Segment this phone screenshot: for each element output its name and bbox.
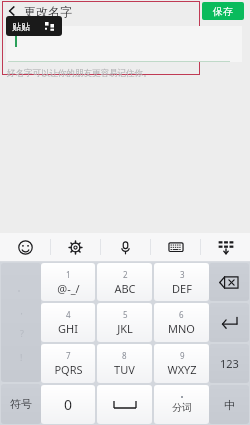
button[interactable]: 保存 bbox=[202, 2, 244, 20]
button[interactable]: 符号 bbox=[1, 384, 41, 424]
button[interactable]: 6 bbox=[154, 303, 209, 342]
button[interactable]: 7 bbox=[41, 344, 95, 383]
button[interactable]: 分词 bbox=[154, 385, 209, 424]
button[interactable]: 9 bbox=[154, 344, 209, 383]
staticText: JKL bbox=[117, 321, 133, 336]
button[interactable]: 2 bbox=[97, 263, 152, 301]
staticText: 贴贴 bbox=[12, 21, 30, 32]
staticText: 7 bbox=[66, 350, 71, 361]
staticText: PQRS bbox=[54, 362, 83, 377]
staticText: DEF bbox=[172, 281, 192, 296]
button[interactable]: Hide keyboard bbox=[201, 233, 250, 261]
staticText: MNO bbox=[168, 321, 195, 336]
button[interactable]: 中 bbox=[209, 385, 249, 424]
button[interactable] bbox=[6, 26, 242, 62]
staticText: WXYZ bbox=[167, 362, 197, 377]
button[interactable]: 0 bbox=[41, 385, 95, 424]
staticText: 1 bbox=[66, 269, 71, 280]
button[interactable]: Backspace bbox=[209, 263, 249, 301]
button[interactable]: 贴贴 bbox=[6, 16, 62, 36]
staticText: 9 bbox=[180, 350, 185, 361]
staticText: 2 bbox=[123, 269, 128, 280]
staticText: 6 bbox=[179, 309, 184, 320]
staticText: ! bbox=[20, 351, 23, 363]
staticText: 分词 bbox=[172, 401, 192, 414]
staticText: 好名字可以让你的朋友更容易记住你。 bbox=[7, 68, 152, 79]
staticText: 3 bbox=[180, 269, 185, 280]
staticText: @-_/ bbox=[57, 281, 80, 296]
staticText: 8 bbox=[122, 350, 127, 361]
button[interactable]: Keyboard layout bbox=[151, 233, 200, 261]
button[interactable]: Back bbox=[0, 0, 24, 22]
staticText: 保存 bbox=[213, 5, 233, 18]
button[interactable]: 8 bbox=[97, 344, 152, 383]
staticText: GHI bbox=[58, 321, 78, 336]
button[interactable]: Enter bbox=[209, 303, 249, 342]
staticText: 5 bbox=[123, 309, 128, 320]
button[interactable]: 5 bbox=[97, 303, 152, 342]
staticText: ? bbox=[20, 327, 24, 339]
button[interactable]: 4 bbox=[41, 303, 95, 342]
button[interactable]: 3 bbox=[154, 263, 209, 301]
button[interactable]: Voice input bbox=[101, 233, 150, 261]
button[interactable]: Emoji bbox=[0, 233, 50, 261]
staticText: 0 bbox=[64, 395, 73, 414]
button[interactable]: Settings bbox=[51, 233, 100, 261]
button[interactable]: Space bbox=[97, 385, 152, 424]
staticText: ABC bbox=[114, 281, 136, 296]
staticText: 中 bbox=[224, 398, 235, 412]
button[interactable]: 123 bbox=[209, 344, 249, 383]
staticText: TUV bbox=[114, 362, 135, 377]
staticText: 4 bbox=[66, 309, 71, 320]
staticText: 123 bbox=[220, 356, 239, 371]
button[interactable]: 1 bbox=[41, 263, 95, 301]
staticText: 更改名字 bbox=[24, 4, 72, 19]
staticText: 符号 bbox=[10, 397, 32, 411]
